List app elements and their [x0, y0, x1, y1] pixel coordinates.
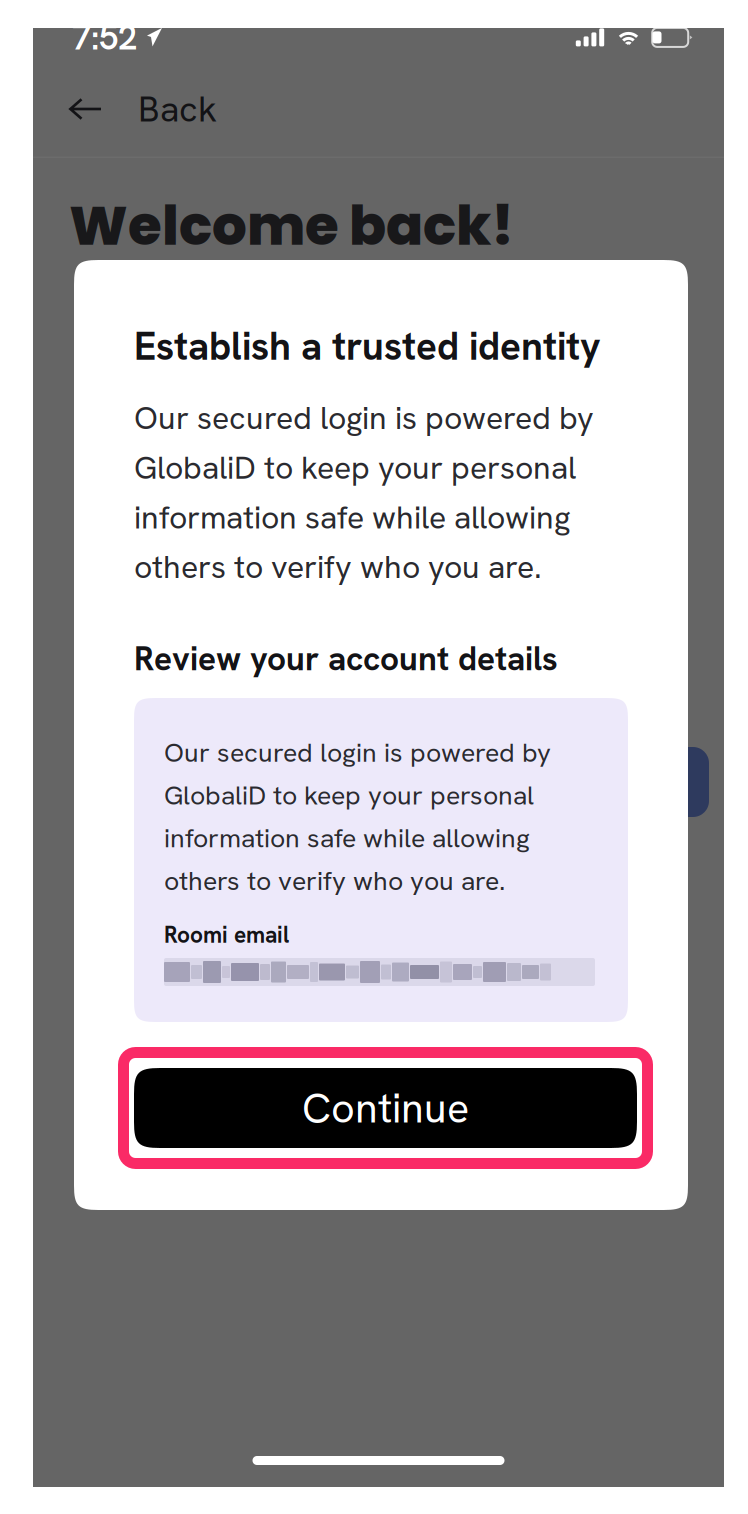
staticText: Roomi email [164, 920, 289, 949]
staticText: Welcome back! [69, 187, 514, 264]
staticText: Continue [302, 1081, 469, 1135]
staticText: 7:52 [72, 15, 137, 60]
button[interactable]: Continue [118, 1047, 653, 1169]
button[interactable]: Back [33, 60, 239, 158]
staticText: Review your account details [134, 637, 558, 680]
staticText: Our secured login is powered by GlobaliD… [134, 397, 594, 588]
staticText: Establish a trusted identity [134, 321, 601, 371]
staticText: Back [138, 85, 217, 132]
staticText: Our secured login is powered by GlobaliD… [164, 735, 551, 898]
